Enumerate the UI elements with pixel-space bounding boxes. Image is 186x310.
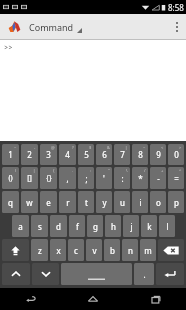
button[interactable]: <	[150, 144, 166, 165]
button[interactable]: ?	[59, 144, 76, 165]
staticText: 7	[120, 149, 125, 160]
button[interactable]: Command	[8, 20, 86, 33]
staticText: Command	[29, 21, 74, 33]
staticText: >	[179, 145, 182, 150]
button[interactable]: z	[31, 239, 48, 261]
staticText: ,	[66, 173, 69, 184]
staticText: .	[72, 168, 74, 173]
button[interactable]: v	[86, 239, 102, 261]
button[interactable]: q	[2, 191, 19, 213]
button[interactable]: s	[31, 215, 48, 237]
button[interactable]: Down	[32, 263, 59, 285]
button[interactable]: ~	[132, 144, 148, 165]
button[interactable]: m	[140, 239, 156, 261]
button[interactable]: (	[2, 167, 19, 189]
staticText: 0	[174, 149, 179, 160]
button[interactable]: p	[168, 191, 184, 213]
button[interactable]: Up	[2, 263, 30, 285]
button[interactable]: More options	[168, 14, 186, 39]
button[interactable]: Enter	[156, 263, 184, 285]
staticText: q	[8, 197, 13, 208]
staticText: 2	[27, 149, 32, 160]
button[interactable]: g	[87, 215, 103, 237]
staticText: ^	[179, 168, 182, 173]
button[interactable]: o	[150, 191, 166, 213]
staticText: {}	[46, 173, 52, 183]
button[interactable]: \	[114, 167, 130, 189]
button[interactable]: u	[114, 191, 130, 213]
staticText: "	[108, 168, 110, 173]
button[interactable]: k	[141, 215, 157, 237]
staticText: 6	[102, 149, 107, 160]
staticText: $	[89, 145, 92, 150]
button[interactable]: Backspace	[158, 239, 184, 261]
button[interactable]: f	[69, 215, 85, 237]
staticText: -	[34, 145, 36, 150]
staticText: f	[76, 221, 79, 232]
staticText: w	[26, 197, 33, 208]
staticText: u	[120, 197, 125, 208]
button[interactable]: Back	[0, 288, 62, 310]
staticText: 9	[156, 149, 161, 160]
staticText: r	[66, 197, 70, 208]
staticText: @	[51, 145, 55, 150]
button[interactable]: l	[159, 215, 175, 237]
button[interactable]: a	[12, 215, 29, 237]
button[interactable]: e	[40, 191, 57, 213]
staticText: a	[18, 221, 23, 232]
button[interactable]: w	[21, 191, 38, 213]
button[interactable]: Recent apps	[124, 288, 186, 310]
button[interactable]: $	[78, 144, 94, 165]
staticText: p	[174, 197, 179, 208]
staticText: ?	[72, 145, 74, 150]
staticText: /	[144, 168, 146, 173]
staticText: ~	[14, 145, 17, 150]
button[interactable]: Space	[61, 263, 132, 285]
button[interactable]: j	[123, 215, 139, 237]
staticText: t	[85, 197, 88, 208]
staticText: v	[92, 245, 97, 256]
staticText: \	[126, 168, 128, 173]
button[interactable]: x	[50, 239, 66, 261]
staticText: []	[27, 173, 32, 183]
button[interactable]: :	[78, 167, 94, 189]
staticText: 8	[138, 149, 143, 160]
button[interactable]: .	[134, 263, 154, 285]
button[interactable]: .	[59, 167, 76, 189]
button[interactable]: Shift	[2, 239, 29, 261]
button[interactable]: &	[96, 144, 112, 165]
button[interactable]: i	[132, 191, 148, 213]
staticText: d	[56, 221, 61, 232]
button[interactable]: |	[21, 167, 38, 189]
staticText: &	[107, 145, 110, 150]
button[interactable]: d	[50, 215, 67, 237]
button[interactable]: +	[150, 167, 166, 189]
button[interactable]: n	[122, 239, 138, 261]
button[interactable]: t	[78, 191, 94, 213]
staticText: y	[102, 197, 107, 208]
button[interactable]: -	[21, 144, 38, 165]
button[interactable]: Home	[62, 288, 124, 310]
button[interactable]: ^	[168, 167, 184, 189]
staticText: 4	[65, 149, 70, 160]
button[interactable]: b	[104, 239, 120, 261]
button[interactable]: r	[59, 191, 76, 213]
button[interactable]: y	[96, 191, 112, 213]
staticText: |	[33, 168, 36, 173]
staticText: ;	[85, 173, 88, 184]
button[interactable]: h	[105, 215, 121, 237]
staticText: 3	[46, 149, 51, 160]
button[interactable]: >	[168, 144, 184, 165]
button[interactable]: @	[40, 144, 57, 165]
button[interactable]: {	[40, 167, 57, 189]
staticText: g	[93, 221, 98, 232]
staticText: '	[103, 173, 105, 184]
button[interactable]: |	[114, 144, 130, 165]
button[interactable]: c	[68, 239, 84, 261]
button[interactable]: /	[132, 167, 148, 189]
button[interactable]: "	[96, 167, 112, 189]
button[interactable]: ~	[2, 144, 19, 165]
staticText: <	[161, 145, 164, 150]
staticText: o	[156, 197, 161, 208]
staticText: 1	[8, 149, 13, 160]
